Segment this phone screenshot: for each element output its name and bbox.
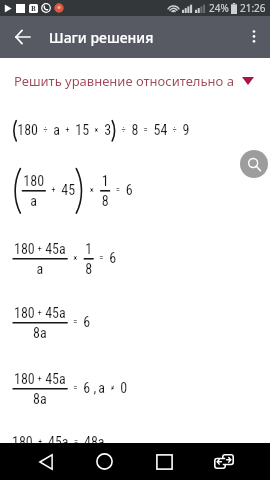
- button[interactable]: Back: [7, 16, 37, 58]
- button[interactable]: More options: [238, 16, 270, 58]
- button[interactable]: Recent apps: [144, 443, 184, 480]
- staticText: Шаги решения: [49, 28, 154, 47]
- button[interactable]: Back: [26, 443, 66, 480]
- staticText: B: [31, 4, 36, 13]
- button[interactable]: Home: [84, 443, 124, 480]
- staticText: 21:26: [240, 1, 266, 15]
- staticText: Решить уравнение относительно a: [14, 72, 234, 90]
- button[interactable]: Screenshot: [204, 443, 244, 480]
- button[interactable]: Search: [240, 150, 268, 178]
- staticText: 24%: [209, 1, 229, 15]
- button[interactable]: Решить уравнение относительно a: [0, 72, 270, 90]
